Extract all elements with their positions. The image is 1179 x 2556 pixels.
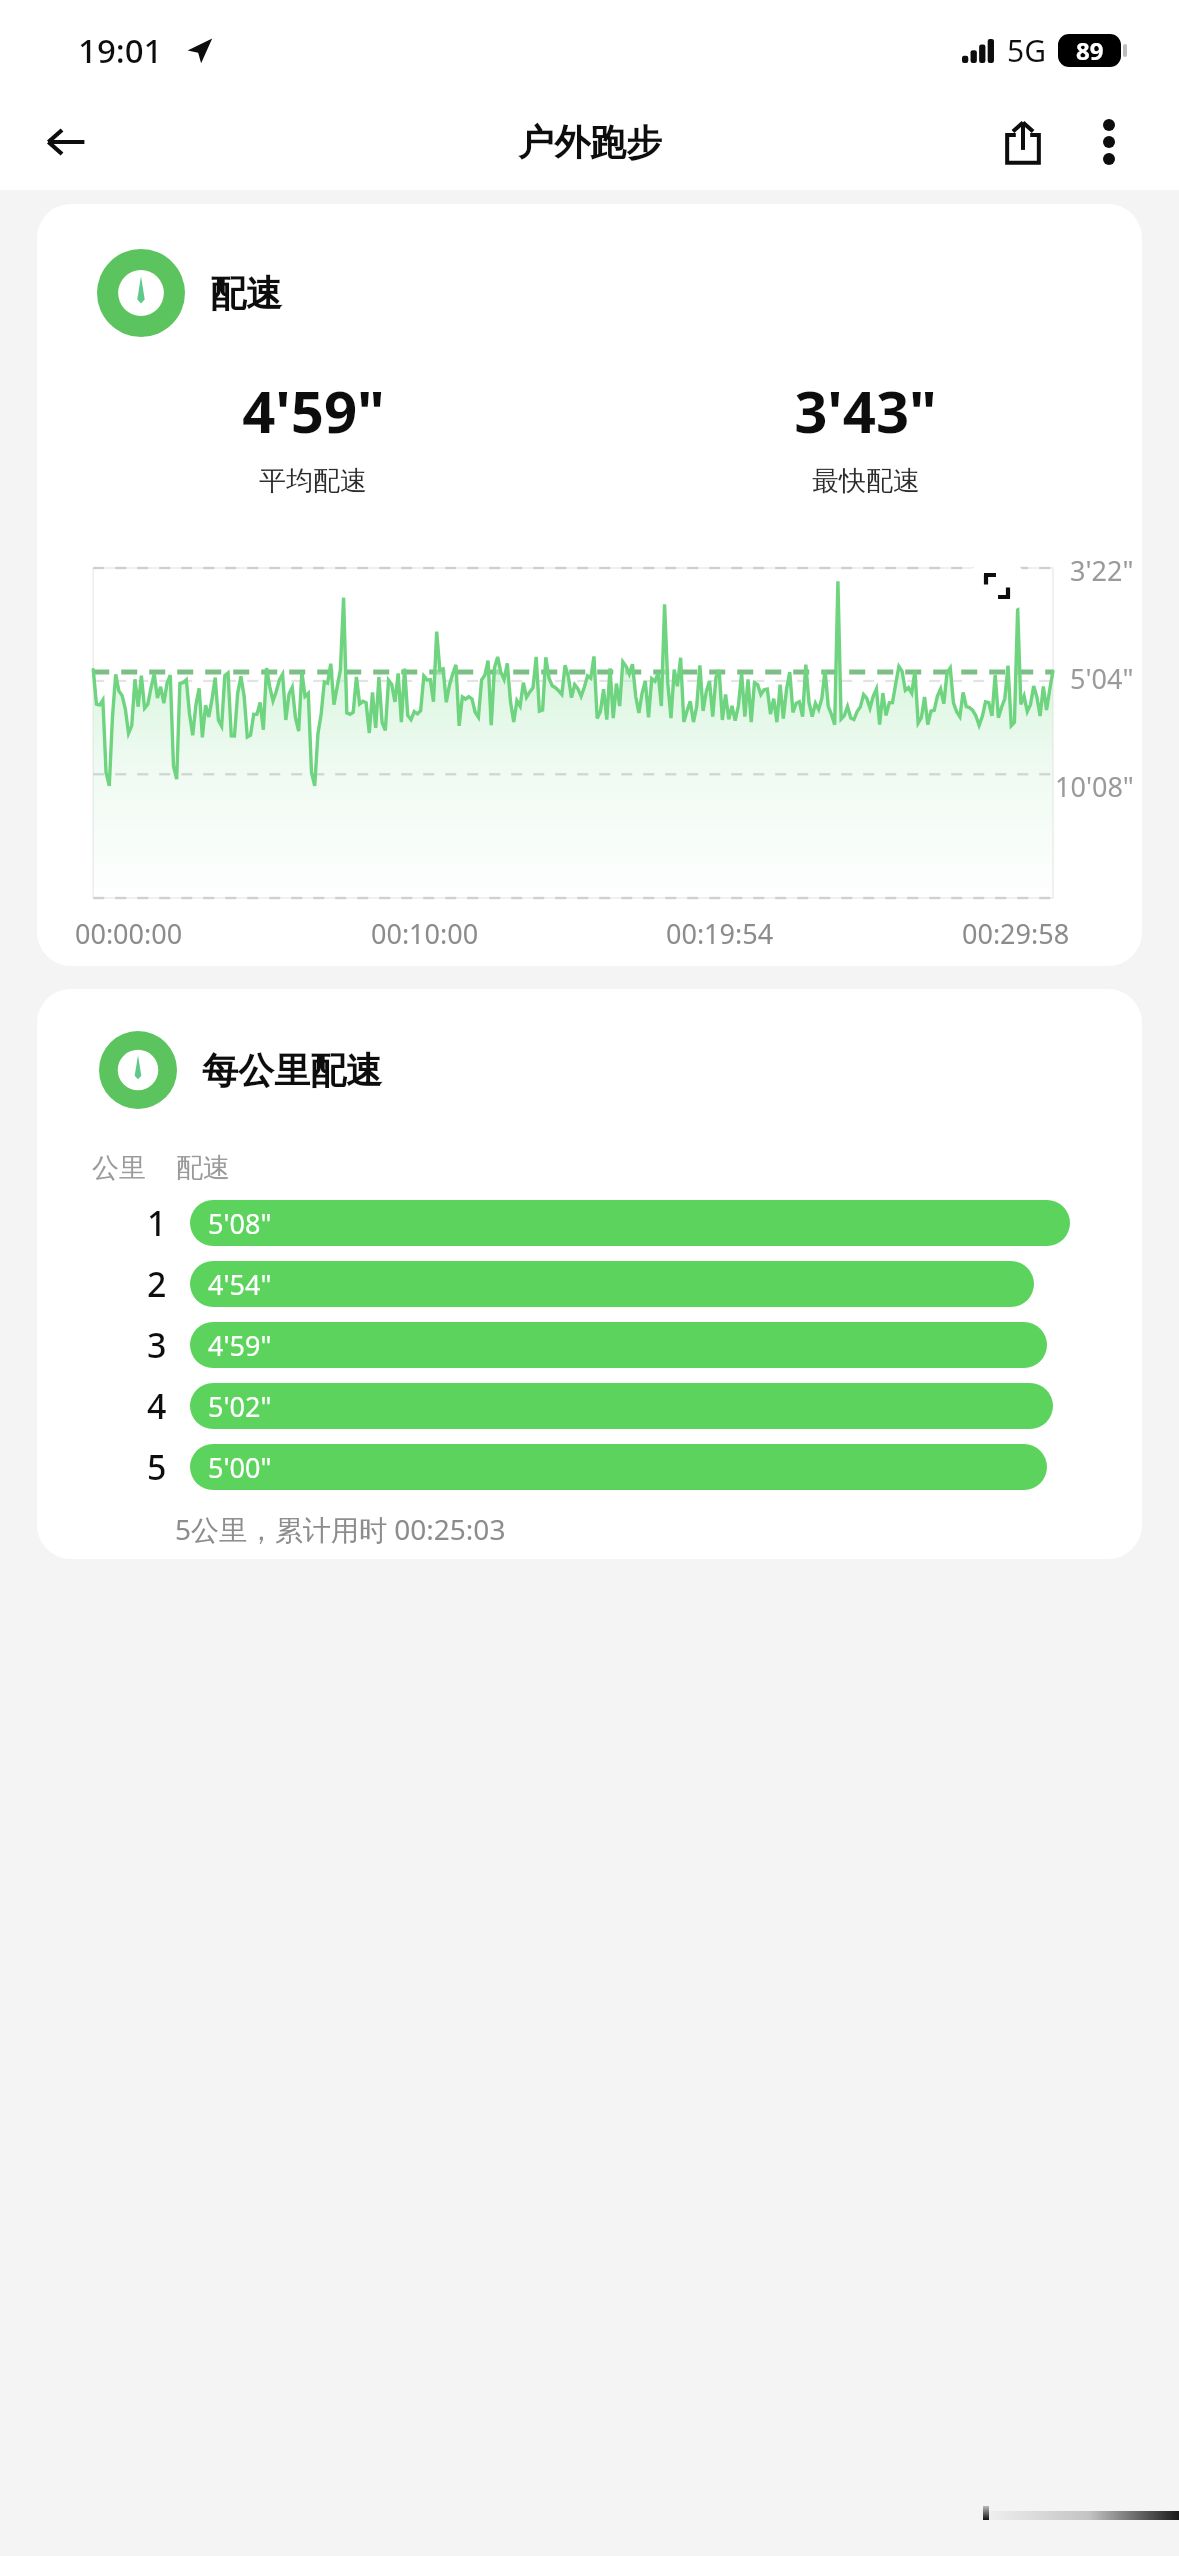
button[interactable]: 3 xyxy=(37,1321,1142,1369)
staticText: 3'22" xyxy=(1070,552,1134,589)
staticText: 最快配速 xyxy=(812,464,920,498)
button[interactable]: 每公里配速 xyxy=(37,989,1142,1559)
staticText: 每公里配速 xyxy=(202,1048,382,1093)
staticText: 户外跑步 xyxy=(518,120,662,165)
button[interactable]: 2 xyxy=(37,1260,1142,1308)
staticText: 5'00" xyxy=(208,1449,272,1486)
staticText: 00:10:00 xyxy=(371,915,479,952)
staticText: 10'08" xyxy=(1055,768,1134,805)
button[interactable]: 4 xyxy=(37,1382,1142,1430)
staticText: 1 xyxy=(147,1200,167,1246)
staticText: 3 xyxy=(147,1322,167,1368)
button[interactable]: Share xyxy=(985,104,1061,180)
staticText: 00:19:54 xyxy=(666,915,774,952)
staticText: 公里 xyxy=(92,1151,146,1185)
staticText: 3'43" xyxy=(794,371,937,450)
button[interactable]: Fullscreen xyxy=(967,556,1027,616)
staticText: 2 xyxy=(147,1261,167,1307)
staticText: 配速 xyxy=(176,1151,230,1185)
button[interactable]: More options xyxy=(1071,104,1147,180)
staticText: 00:29:58 xyxy=(962,915,1070,952)
staticText: 4'59" xyxy=(208,1327,272,1364)
button[interactable]: 1 xyxy=(37,1199,1142,1247)
button[interactable]: 配速 xyxy=(37,204,1142,966)
staticText: 5G xyxy=(1007,30,1046,71)
button[interactable]: Back xyxy=(30,106,102,178)
staticText: 配速 xyxy=(210,271,282,316)
staticText: 5公里，累计用时 00:25:03 xyxy=(175,1510,506,1548)
staticText: 平均配速 xyxy=(259,464,367,498)
staticText: 00:00:00 xyxy=(75,915,183,952)
staticText: 5 xyxy=(147,1444,167,1490)
staticText: 5'04" xyxy=(1070,660,1134,697)
staticText: 5'02" xyxy=(208,1388,272,1425)
staticText: 19:01 xyxy=(78,28,163,73)
staticText: 89 xyxy=(1076,34,1104,67)
button[interactable]: 5 xyxy=(37,1443,1142,1491)
staticText: 5'08" xyxy=(208,1205,272,1242)
staticText: 4'54" xyxy=(208,1266,272,1303)
staticText: 4 xyxy=(147,1383,167,1429)
staticText: 4'59" xyxy=(242,371,385,450)
